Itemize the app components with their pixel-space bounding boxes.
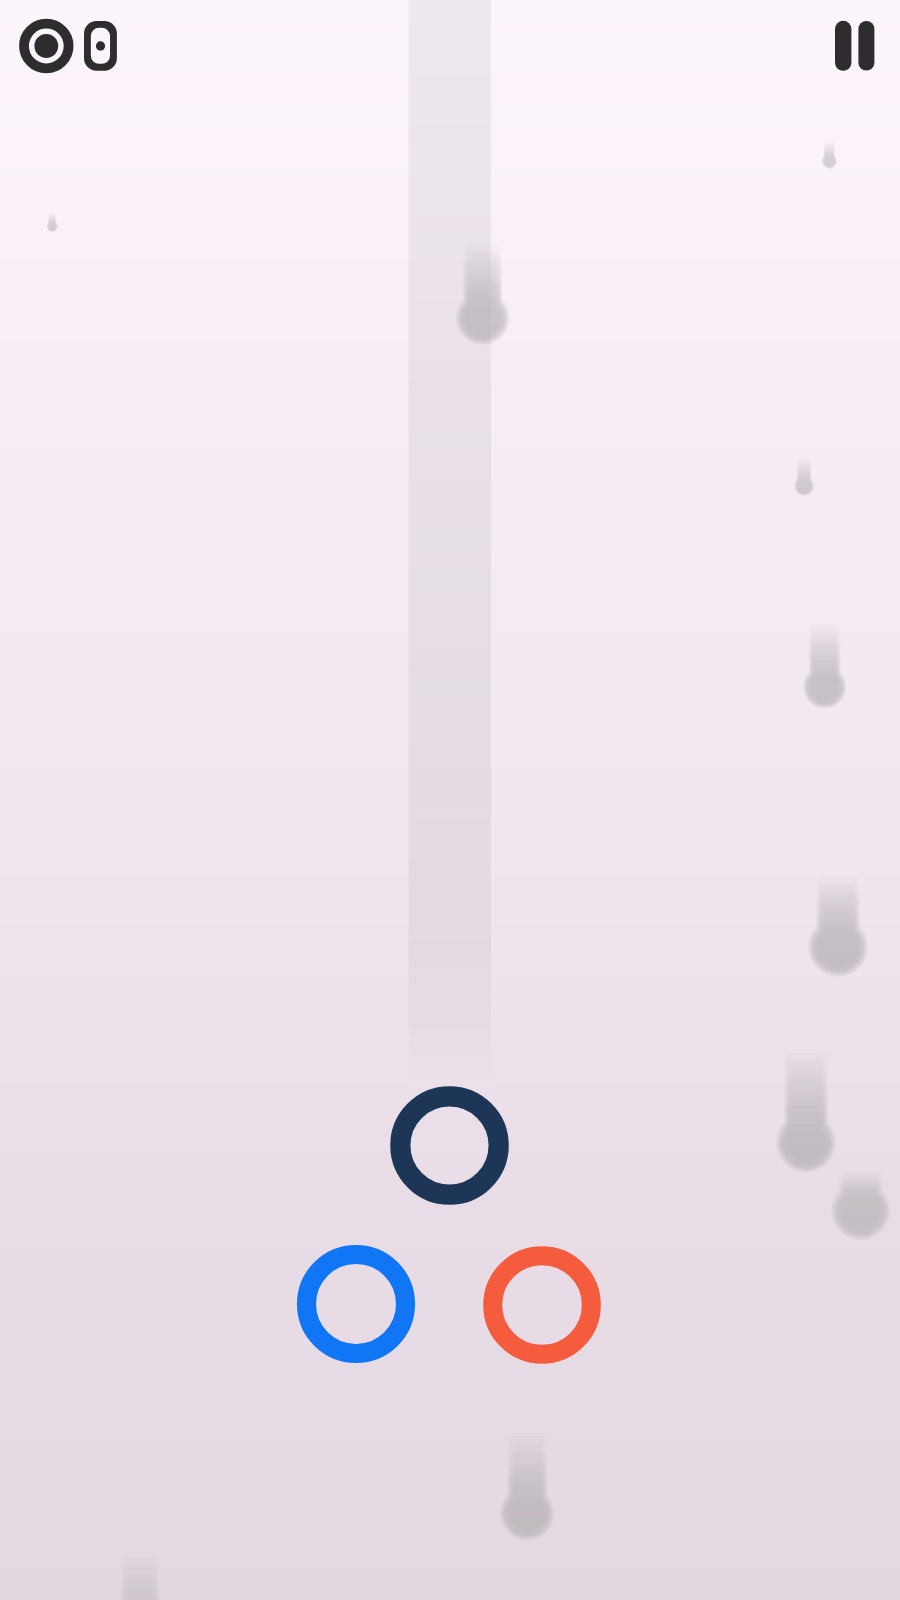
button[interactable]: Blue ring xyxy=(297,1245,415,1363)
button[interactable]: Score xyxy=(10,10,125,82)
button[interactable]: Red ring xyxy=(483,1246,601,1364)
button[interactable]: Pause xyxy=(820,10,890,82)
button[interactable]: Dark ring xyxy=(390,1086,509,1205)
